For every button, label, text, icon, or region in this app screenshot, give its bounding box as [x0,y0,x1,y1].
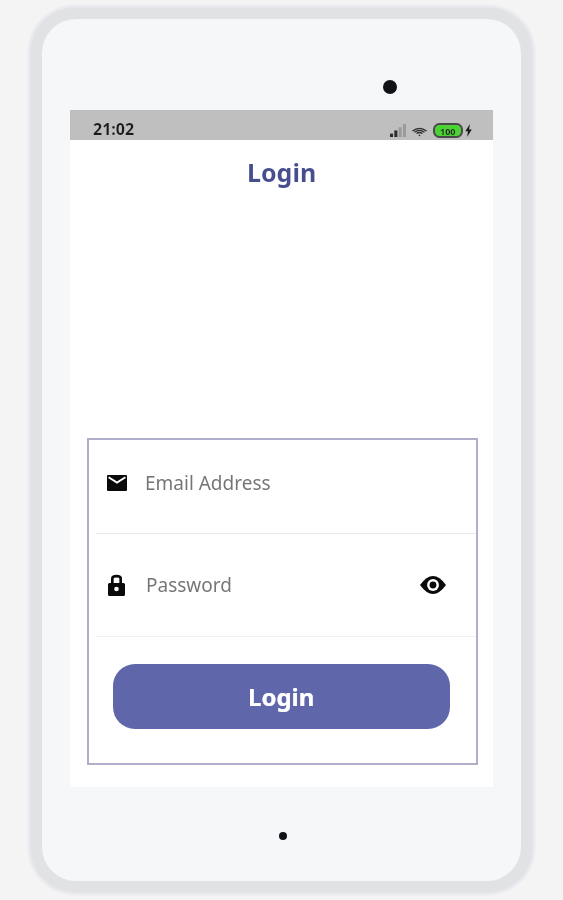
button[interactable]: Password [87,534,478,636]
staticText: Login [248,680,315,713]
staticText: 100 [440,125,456,137]
staticText: Password [146,572,232,598]
button[interactable]: Email Address [87,438,478,527]
button[interactable]: Login [113,664,450,729]
button[interactable]: Show password [418,570,448,600]
staticText: 21:02 [93,118,135,140]
staticText: Login [247,155,317,189]
staticText: Email Address [145,470,271,496]
